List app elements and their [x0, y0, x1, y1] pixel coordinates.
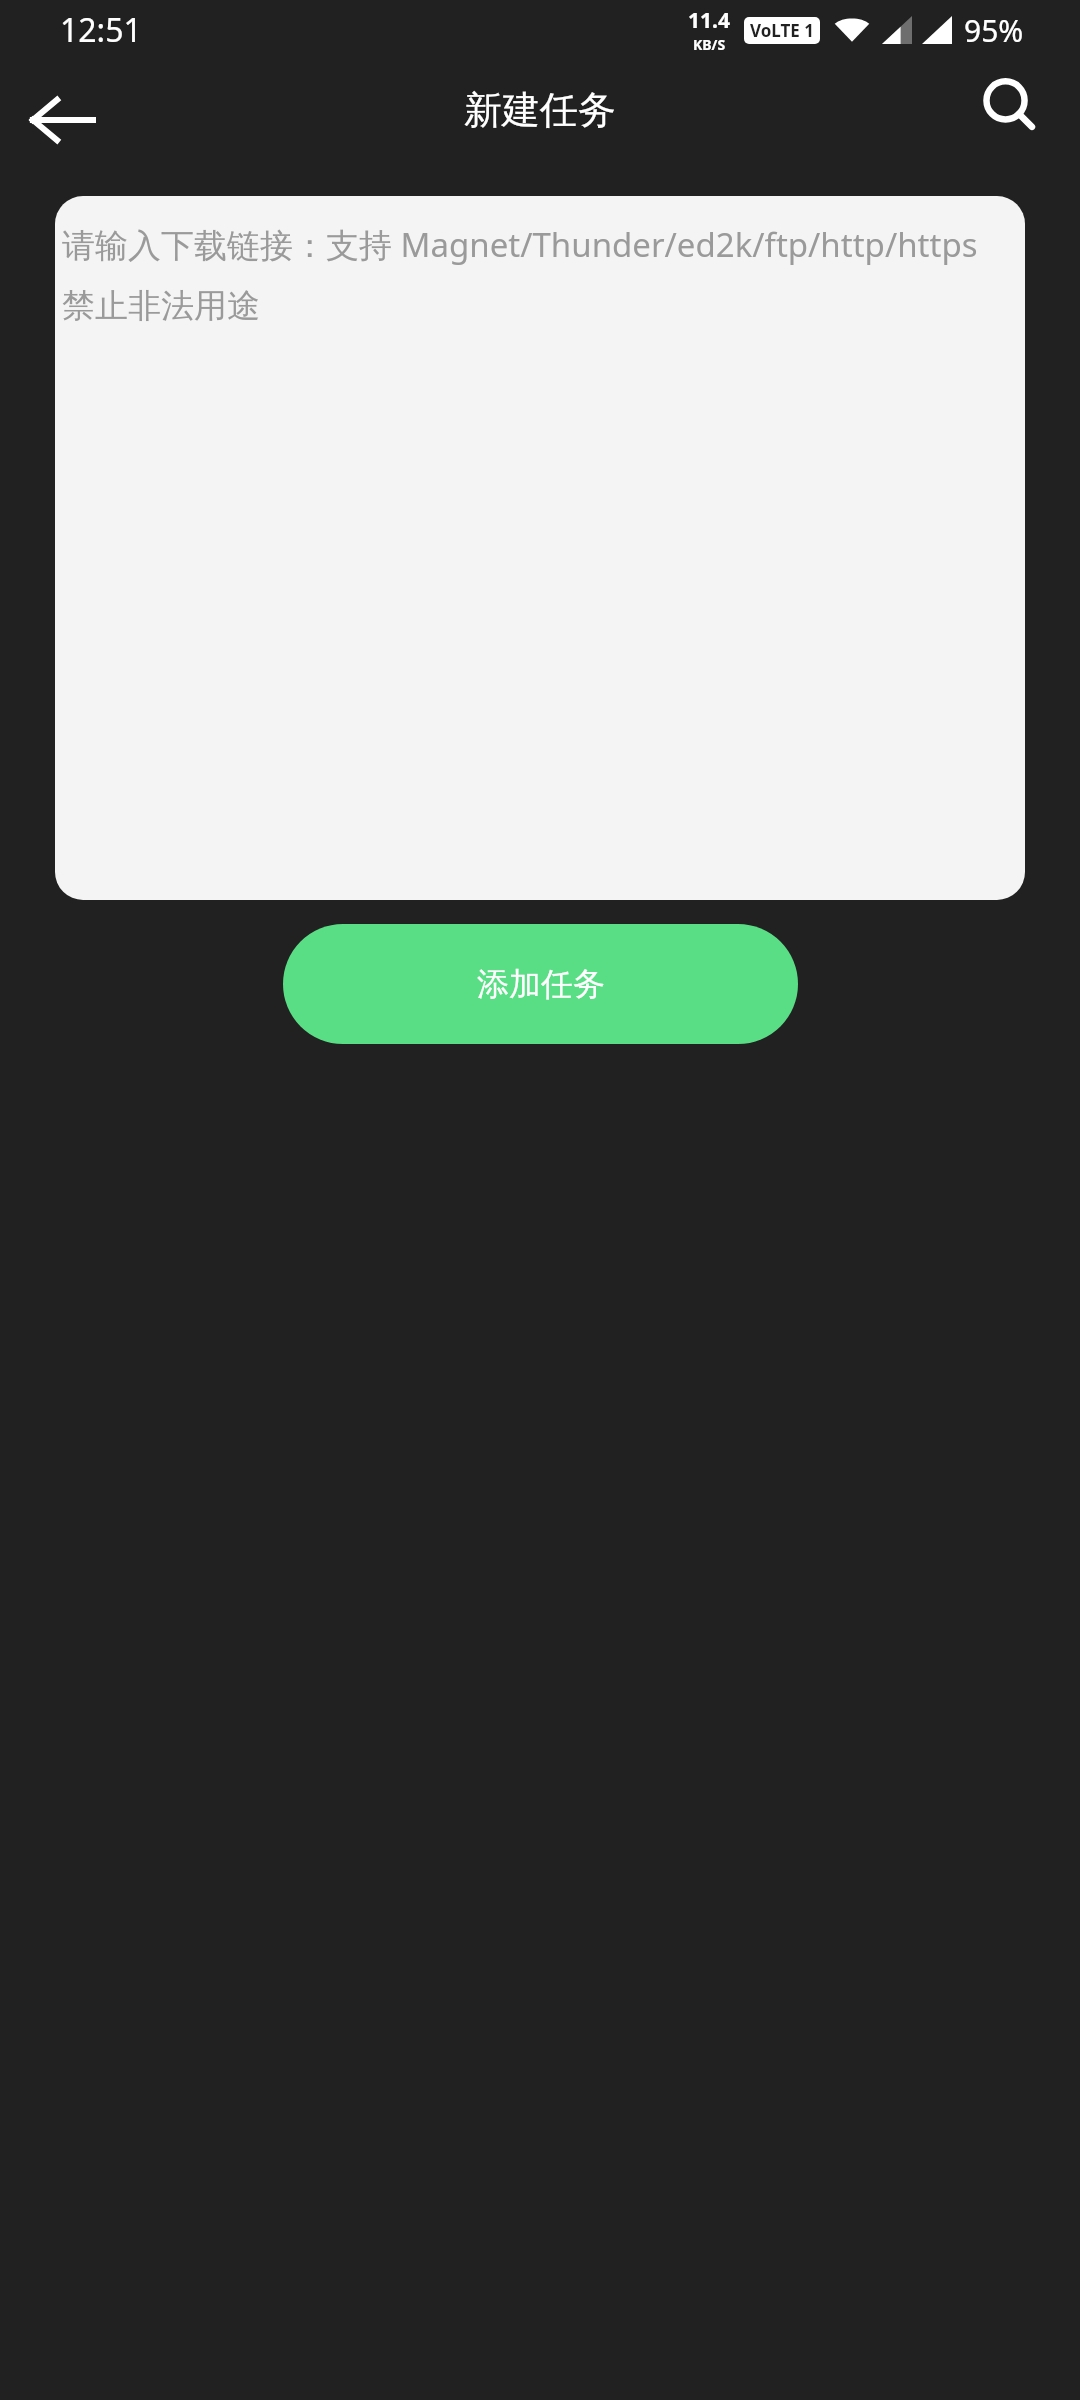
staticText: VoLTE 1: [750, 19, 814, 42]
button[interactable]: Back: [14, 72, 110, 168]
staticText: 12:51: [60, 8, 142, 52]
staticText: 新建任务: [464, 86, 616, 134]
staticText: KB/S: [693, 35, 726, 54]
staticText: 添加任务: [477, 964, 605, 1004]
button[interactable]: 添加任务: [283, 924, 798, 1044]
button[interactable]: Search: [966, 62, 1054, 150]
staticText: 11.4: [688, 6, 730, 35]
button[interactable]: 请输入下载链接：支持 Magnet/Thunder/ed2k/ftp/http/…: [55, 196, 1025, 900]
staticText: 禁止非法用途: [62, 285, 260, 327]
staticText: 95%: [964, 10, 1024, 51]
staticText: 请输入下载链接：支持 Magnet/Thunder/ed2k/ftp/http/…: [62, 222, 978, 267]
